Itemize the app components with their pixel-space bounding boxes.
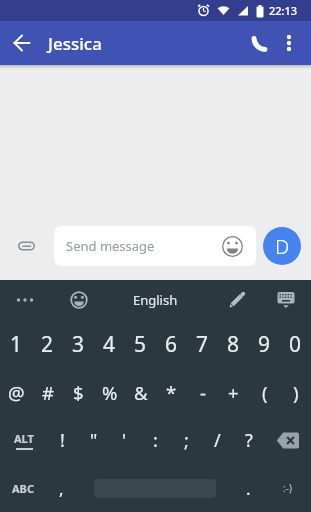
- button[interactable]: /: [202, 416, 233, 464]
- button[interactable]: Send message: [54, 226, 256, 266]
- staticText: ;: [184, 428, 189, 453]
- staticText: D: [275, 233, 290, 260]
- staticText: English: [133, 291, 178, 309]
- button[interactable]: %: [94, 368, 125, 416]
- staticText: ?: [245, 428, 253, 453]
- staticText: 0: [289, 330, 302, 359]
- button[interactable]: [261, 280, 311, 320]
- staticText: :-): [283, 481, 292, 495]
- button[interactable]: -: [187, 368, 218, 416]
- button[interactable]: 4: [94, 320, 125, 368]
- staticText: (: [262, 380, 268, 405]
- staticText: 6: [165, 330, 178, 359]
- button[interactable]: [94, 464, 216, 512]
- staticText: ': [122, 428, 127, 453]
- staticText: ,: [59, 477, 64, 500]
- button[interactable]: @: [0, 368, 32, 416]
- staticText: Jessica: [48, 32, 102, 55]
- button[interactable]: [269, 21, 309, 65]
- button[interactable]: 6: [156, 320, 187, 368]
- button[interactable]: 8: [218, 320, 249, 368]
- staticText: *: [166, 380, 177, 405]
- button[interactable]: ): [280, 368, 311, 416]
- staticText: Send message: [66, 237, 155, 255]
- button[interactable]: [229, 21, 269, 65]
- staticText: @: [8, 380, 25, 405]
- button[interactable]: .: [233, 464, 264, 512]
- staticText: ": [90, 428, 98, 453]
- button[interactable]: :: [140, 416, 171, 464]
- button[interactable]: English: [108, 280, 203, 320]
- staticText: &: [134, 380, 148, 405]
- button[interactable]: ": [78, 416, 109, 464]
- staticText: #: [42, 380, 54, 405]
- staticText: ): [293, 380, 299, 405]
- button[interactable]: &: [125, 368, 156, 416]
- staticText: 8: [227, 330, 240, 359]
- button[interactable]: 0: [280, 320, 311, 368]
- staticText: 7: [196, 330, 209, 359]
- staticText: 4: [103, 330, 116, 359]
- button[interactable]: 7: [187, 320, 218, 368]
- button[interactable]: 1: [0, 320, 32, 368]
- staticText: 3: [72, 330, 85, 359]
- button[interactable]: !: [47, 416, 78, 464]
- staticText: %: [102, 380, 118, 405]
- button[interactable]: ': [109, 416, 140, 464]
- button[interactable]: (: [249, 368, 280, 416]
- staticText: /: [214, 428, 221, 453]
- button[interactable]: ,: [46, 464, 77, 512]
- button[interactable]: 9: [249, 320, 280, 368]
- button[interactable]: [0, 21, 44, 65]
- button[interactable]: [0, 226, 54, 266]
- button[interactable]: [50, 280, 108, 320]
- button[interactable]: ?: [233, 416, 264, 464]
- staticText: 9: [258, 330, 271, 359]
- button[interactable]: *: [156, 368, 187, 416]
- button[interactable]: ALT: [0, 416, 47, 464]
- staticText: .: [246, 477, 251, 500]
- button[interactable]: D: [263, 227, 301, 265]
- button[interactable]: #: [32, 368, 63, 416]
- staticText: !: [60, 428, 65, 453]
- staticText: $: [73, 380, 84, 405]
- staticText: 1: [10, 330, 23, 359]
- staticText: 22:13: [269, 3, 298, 18]
- staticText: ABC: [12, 481, 34, 496]
- button[interactable]: 2: [32, 320, 63, 368]
- button[interactable]: ;: [171, 416, 202, 464]
- staticText: :: [153, 428, 158, 453]
- button[interactable]: +: [218, 368, 249, 416]
- button[interactable]: [213, 280, 261, 320]
- button[interactable]: [0, 280, 50, 320]
- staticText: +: [228, 380, 239, 405]
- button[interactable]: ABC: [0, 464, 46, 512]
- staticText: -: [200, 380, 206, 405]
- button[interactable]: 5: [125, 320, 156, 368]
- staticText: 2: [41, 330, 54, 359]
- button[interactable]: $: [63, 368, 94, 416]
- staticText: 5: [134, 330, 147, 359]
- button[interactable]: :-): [264, 464, 311, 512]
- staticText: ALT: [14, 431, 34, 446]
- button[interactable]: 3: [63, 320, 94, 368]
- button[interactable]: [264, 416, 311, 464]
